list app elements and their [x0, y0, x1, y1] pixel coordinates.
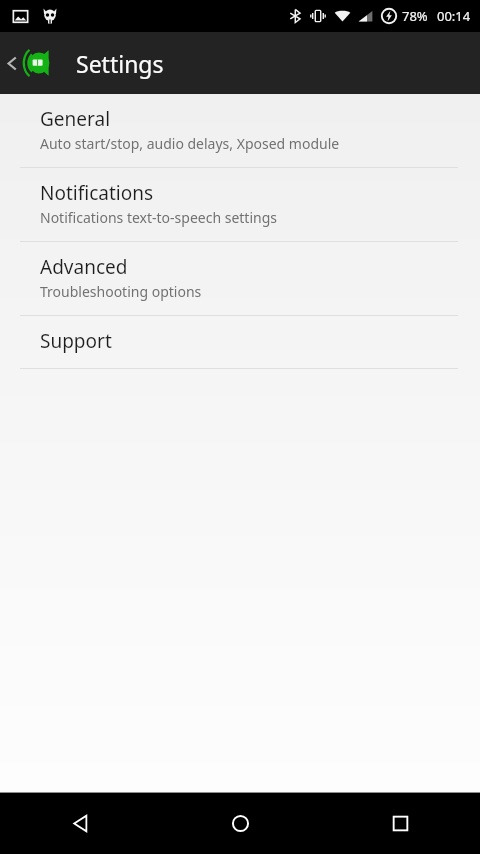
staticText: Support: [40, 328, 112, 354]
staticText: 78%: [402, 7, 428, 25]
staticText: 00:14: [437, 7, 471, 25]
button[interactable]: Notifications: [0, 168, 480, 241]
staticText: Troubleshooting options: [40, 282, 202, 301]
staticText: Advanced: [40, 254, 128, 280]
staticText: Settings: [76, 48, 164, 79]
button[interactable]: Back: [0, 793, 160, 854]
staticText: Notifications text-to-speech settings: [40, 208, 277, 227]
button[interactable]: Advanced: [0, 242, 480, 315]
button[interactable]: Recent apps: [320, 793, 480, 854]
staticText: Auto start/stop, audio delays, Xposed mo…: [40, 134, 340, 153]
staticText: Notifications: [40, 180, 154, 206]
button[interactable]: General: [0, 94, 480, 167]
button[interactable]: Navigate up: [0, 32, 480, 94]
button[interactable]: Home: [160, 793, 320, 854]
staticText: General: [40, 106, 111, 132]
button[interactable]: Support: [0, 316, 480, 368]
